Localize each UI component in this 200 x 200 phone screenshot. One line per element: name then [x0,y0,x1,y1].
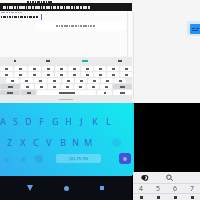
button[interactable]: G [49,112,62,130]
staticText: D [25,115,32,127]
button[interactable]: key [120,72,132,77]
button[interactable]: key [107,66,119,71]
button[interactable] [36,21,126,30]
button[interactable]: Emoji [138,172,148,182]
button[interactable]: 5 [150,184,167,193]
button[interactable]: key [62,78,74,83]
staticText: A [0,115,6,127]
button[interactable]: key [0,72,13,77]
staticText: 7 [190,184,195,193]
button[interactable]: key [42,66,54,71]
button[interactable]: K [88,112,101,130]
button[interactable]: L [102,112,115,130]
button[interactable]: M [82,133,95,151]
button[interactable]: key [55,72,67,77]
button[interactable]: key [81,72,93,77]
button[interactable]: key [0,90,20,95]
button[interactable]: F [35,112,48,130]
button[interactable]: App bar [0,3,132,11]
button[interactable]: key [113,90,132,95]
button[interactable]: key [14,72,27,77]
button[interactable]: B [56,133,69,151]
button[interactable]: Enter [119,153,131,164]
button[interactable]: N [69,133,82,151]
staticText: L [106,115,111,127]
button[interactable]: Send [190,24,200,34]
button[interactable] [184,194,200,200]
button[interactable]: key [37,90,96,95]
button[interactable]: Recents [96,182,108,194]
button[interactable]: key [101,78,113,83]
button[interactable]: key [107,72,119,77]
button[interactable]: key [20,78,33,83]
staticText: F [39,115,44,127]
button[interactable]: key [48,78,61,83]
button[interactable]: Search [164,172,174,182]
button[interactable]: 6 [167,184,184,193]
button[interactable]: Back [24,182,36,194]
staticText: X [20,136,26,148]
staticText: 6 [173,184,178,193]
button[interactable]: key [68,66,80,71]
staticText: 4 [139,184,144,193]
button[interactable]: A [0,112,9,130]
button[interactable] [133,194,150,200]
button[interactable]: key [55,66,67,71]
button[interactable]: key [28,72,41,77]
button[interactable]: key [88,78,100,83]
button[interactable]: key [21,90,36,95]
staticText: N [72,136,79,148]
button[interactable]: Z [3,133,16,151]
button[interactable]: key [100,84,112,89]
button[interactable]: key [28,66,41,71]
button[interactable]: key [81,66,93,71]
button[interactable]: key [94,66,106,71]
button[interactable]: 4 [133,184,150,193]
button[interactable]: Symbols [2,155,11,164]
staticText: M [84,136,93,148]
staticText: J [80,115,83,127]
button[interactable]: key [61,84,73,89]
button[interactable]: S [9,112,22,130]
staticText: H [65,115,72,127]
staticText: G [52,115,59,127]
button[interactable]: Home [60,182,72,194]
button[interactable]: D [22,112,35,130]
button[interactable]: X [16,133,29,151]
button[interactable]: key [48,84,60,89]
button[interactable]: key [113,84,132,89]
button[interactable]: key [0,84,20,89]
button[interactable]: 7 [184,184,200,193]
button[interactable]: Settings [18,154,28,164]
button[interactable]: key [14,66,27,71]
staticText: B [60,136,66,148]
button[interactable]: key [87,84,99,89]
button[interactable]: key [6,78,19,83]
button[interactable]: key [74,84,86,89]
button[interactable]: key [97,90,112,95]
staticText: C [33,136,39,148]
button[interactable]: Space [56,154,101,163]
button[interactable] [167,194,184,200]
button[interactable]: key [21,84,34,89]
button[interactable]: key [34,78,47,83]
button[interactable]: V [42,133,55,151]
button[interactable]: key [94,72,106,77]
button[interactable]: Backspace [109,135,123,149]
button[interactable]: H [62,112,75,130]
staticText: 5 [156,184,161,193]
button[interactable]: J [75,112,88,130]
button[interactable]: key [68,72,80,77]
button[interactable]: key [120,66,132,71]
button[interactable]: key [75,78,87,83]
staticText: Z [7,136,13,148]
button[interactable]: key [114,78,126,83]
button[interactable]: C [29,133,42,151]
button[interactable]: key [0,66,13,71]
button[interactable]: Emoji [33,153,44,164]
staticText: K [92,115,98,127]
button[interactable]: key [42,72,54,77]
button[interactable] [150,194,167,200]
button[interactable]: key [35,84,47,89]
staticText: S [13,115,18,127]
